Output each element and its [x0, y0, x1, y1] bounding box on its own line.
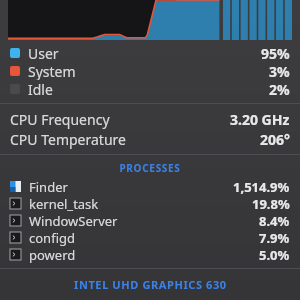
staticText: 3.20 GHz — [230, 110, 290, 129]
button[interactable]: System — [10, 62, 290, 80]
button[interactable]: Finder — [10, 178, 290, 195]
staticText: 19.8% — [252, 195, 290, 212]
staticText: 2% — [269, 80, 290, 98]
staticText: kernel_task — [29, 195, 99, 212]
staticText: System — [28, 62, 76, 80]
staticText: Finder — [29, 178, 68, 195]
staticText: INTEL UHD GRAPHICS 630 — [74, 277, 227, 292]
button[interactable]: Idle — [10, 80, 290, 98]
staticText: Idle — [28, 80, 53, 98]
staticText: 7.9% — [259, 229, 290, 246]
staticText: 8.4% — [259, 212, 290, 229]
staticText: 95% — [261, 44, 290, 62]
staticText: CPU Temperature — [10, 130, 126, 149]
staticText: 3% — [269, 62, 290, 80]
button[interactable]: WindowServer — [10, 212, 290, 229]
button[interactable]: INTEL UHD GRAPHICS 630 — [0, 269, 300, 300]
staticText: powerd — [29, 246, 76, 263]
button[interactable]: CPU history graph — [8, 0, 292, 40]
staticText: 5.0% — [259, 246, 290, 263]
staticText: 1,514.9% — [233, 178, 290, 195]
staticText: PROCESSES — [0, 161, 300, 175]
button[interactable]: powerd — [10, 246, 290, 263]
button[interactable]: CPU Frequency — [10, 109, 290, 129]
button[interactable]: kernel_task — [10, 195, 290, 212]
button[interactable]: CPU Temperature — [10, 129, 290, 149]
staticText: configd — [29, 229, 75, 246]
button[interactable]: User — [10, 44, 290, 62]
staticText: 206° — [260, 130, 290, 149]
staticText: User — [28, 44, 59, 62]
button[interactable]: configd — [10, 229, 290, 246]
staticText: CPU Frequency — [10, 110, 110, 129]
staticText: WindowServer — [29, 212, 118, 229]
